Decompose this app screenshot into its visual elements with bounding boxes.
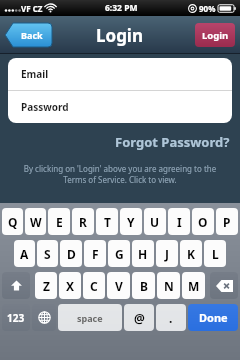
button[interactable]: Login — [195, 23, 235, 47]
button[interactable]: I — [168, 208, 190, 235]
button[interactable]: F — [84, 240, 106, 267]
staticText: A — [20, 246, 29, 262]
staticText: J — [165, 246, 169, 262]
button[interactable]: Email — [8, 58, 232, 90]
button[interactable]: K — [180, 240, 202, 267]
staticText: By clicking on 'Login' above you are agr… — [18, 163, 222, 186]
staticText: 6:32 PM — [105, 2, 138, 14]
staticText: @ — [134, 310, 145, 326]
button[interactable]: R — [72, 208, 94, 235]
button[interactable]: Forgot Password? — [0, 133, 230, 151]
button[interactable]: Backspace — [210, 272, 238, 299]
staticText: P — [223, 214, 231, 230]
button[interactable]: S — [37, 240, 58, 267]
staticText: C — [90, 278, 98, 294]
staticText: Login — [202, 29, 229, 42]
button[interactable]: Y — [120, 208, 142, 235]
staticText: Forgot Password? — [115, 133, 230, 151]
staticText: R — [79, 214, 87, 230]
staticText: N — [164, 278, 174, 294]
button[interactable]: V — [107, 272, 130, 299]
button[interactable]: E — [48, 208, 70, 235]
staticText: H — [138, 246, 148, 262]
staticText: G — [115, 246, 124, 262]
staticText: Z — [43, 278, 50, 294]
staticText: X — [66, 278, 75, 294]
button[interactable]: D — [60, 240, 82, 267]
staticText: B — [140, 278, 148, 294]
staticText: Q — [8, 214, 18, 230]
button[interactable]: space — [58, 304, 122, 331]
staticText: Back — [21, 29, 43, 41]
button[interactable]: G — [108, 240, 130, 267]
button[interactable]: C — [83, 272, 105, 299]
staticText: I — [177, 214, 182, 230]
staticText: V — [115, 278, 123, 294]
button[interactable]: 123 — [2, 304, 30, 331]
staticText: F — [92, 246, 99, 262]
staticText: D — [67, 246, 76, 262]
staticText: VF CZ — [21, 3, 43, 14]
button[interactable]: T — [96, 208, 118, 235]
button[interactable]: By clicking on 'Login' above you are agr… — [18, 163, 222, 186]
button[interactable]: Z — [35, 272, 57, 299]
staticText: S — [44, 246, 51, 262]
button[interactable]: Back — [5, 23, 52, 47]
button[interactable]: Q — [2, 208, 23, 235]
button[interactable]: J — [156, 240, 178, 267]
button[interactable]: N — [157, 272, 180, 299]
staticText: W — [30, 214, 42, 230]
button[interactable]: O — [192, 208, 214, 235]
button[interactable]: Password — [8, 91, 232, 123]
staticText: Email — [21, 67, 49, 81]
button[interactable]: P — [216, 208, 238, 235]
staticText: Y — [127, 214, 135, 230]
staticText: 123 — [7, 311, 25, 325]
button[interactable]: X — [59, 272, 81, 299]
button[interactable]: . — [156, 304, 186, 331]
staticText: T — [104, 214, 111, 230]
staticText: . — [169, 310, 173, 326]
button[interactable]: Shift — [2, 272, 30, 299]
staticText: Login — [96, 24, 144, 47]
staticText: Password — [21, 100, 69, 114]
button[interactable]: Done — [188, 304, 238, 331]
button[interactable]: L — [204, 240, 226, 267]
staticText: U — [150, 214, 160, 230]
button[interactable]: @ — [124, 304, 154, 331]
button[interactable]: Change keyboard — [32, 304, 56, 331]
button[interactable]: W — [25, 208, 46, 235]
button[interactable]: H — [132, 240, 154, 267]
button[interactable]: U — [144, 208, 166, 235]
staticText: K — [187, 246, 195, 262]
staticText: space — [77, 312, 103, 324]
staticText: L — [212, 246, 219, 262]
button[interactable]: A — [14, 240, 35, 267]
staticText: E — [56, 214, 63, 230]
button[interactable]: M — [182, 272, 205, 299]
staticText: M — [188, 278, 200, 294]
staticText: Done — [199, 310, 228, 325]
button[interactable]: B — [132, 272, 155, 299]
staticText: 90% — [199, 3, 216, 14]
staticText: O — [198, 214, 208, 230]
